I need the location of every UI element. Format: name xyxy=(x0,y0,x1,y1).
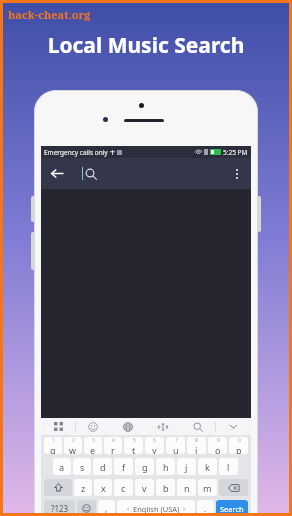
staticText: m xyxy=(203,482,212,494)
button[interactable]: Backspace xyxy=(219,479,248,496)
staticText: p xyxy=(236,444,242,454)
staticText: w xyxy=(69,444,77,454)
staticText: t xyxy=(132,444,136,454)
staticText: , xyxy=(105,503,108,514)
button[interactable]: v xyxy=(135,479,154,496)
button[interactable]: h xyxy=(156,458,175,475)
button[interactable]: Emoji xyxy=(77,500,96,516)
button[interactable]: 3 xyxy=(84,437,102,454)
staticText: English (USA) xyxy=(133,504,180,514)
staticText: k xyxy=(205,461,210,473)
staticText: a xyxy=(59,461,65,473)
staticText: Search xyxy=(220,504,244,514)
staticText: 2 xyxy=(72,437,75,444)
button[interactable]: More options xyxy=(223,160,251,188)
button[interactable]: . xyxy=(197,500,214,516)
button[interactable]: ?123 xyxy=(44,500,75,516)
staticText: 3 xyxy=(92,437,95,444)
staticText: 7 xyxy=(175,437,178,444)
staticText: g xyxy=(142,461,148,473)
staticText: u xyxy=(173,444,179,454)
button[interactable]: 1 xyxy=(44,437,62,454)
staticText: 5 xyxy=(133,437,136,444)
staticText: Local Music Search xyxy=(0,31,292,60)
staticText: o xyxy=(215,444,221,454)
button[interactable]: s xyxy=(73,458,91,475)
staticText: hack-cheat.org xyxy=(8,7,91,22)
button[interactable]: z xyxy=(74,479,92,496)
button[interactable]: Shift xyxy=(44,479,72,496)
staticText: 9 xyxy=(217,437,220,444)
button[interactable]: f xyxy=(114,458,133,475)
staticText: 5:25 PM xyxy=(223,148,248,157)
staticText: ‹ xyxy=(127,504,130,514)
staticText: f xyxy=(122,461,126,473)
button[interactable]: 2 xyxy=(64,437,82,454)
staticText: s xyxy=(80,461,85,473)
button[interactable]: , xyxy=(98,500,115,516)
staticText: 8 xyxy=(195,437,198,444)
button[interactable]: 5 xyxy=(124,437,143,454)
staticText: h xyxy=(163,461,169,473)
staticText: 0 xyxy=(238,437,241,444)
staticText: d xyxy=(100,461,106,473)
staticText: x xyxy=(101,482,106,494)
button[interactable]: a xyxy=(53,458,71,475)
staticText: i xyxy=(195,444,198,454)
button[interactable]: 9 xyxy=(208,437,227,454)
button[interactable]: Collapse xyxy=(216,418,251,435)
staticText: r xyxy=(111,444,115,454)
button[interactable]: m xyxy=(198,479,217,496)
button[interactable]: l xyxy=(219,458,238,475)
staticText: b xyxy=(163,482,169,494)
staticText: . xyxy=(204,503,207,514)
staticText: Emergency calls only xyxy=(44,148,108,157)
button[interactable]: Back xyxy=(41,158,72,189)
staticText: y xyxy=(152,444,157,454)
button[interactable]: 6 xyxy=(145,437,164,454)
button[interactable]: b xyxy=(156,479,175,496)
button[interactable]: Search xyxy=(180,418,215,435)
button[interactable]: ‹ xyxy=(117,500,195,516)
button[interactable]: c xyxy=(114,479,133,496)
button[interactable]: Language xyxy=(110,418,145,435)
button[interactable]: 4 xyxy=(104,437,122,454)
staticText: v xyxy=(142,482,147,494)
staticText: c xyxy=(121,482,126,494)
button[interactable]: d xyxy=(93,458,112,475)
staticText: › xyxy=(183,504,186,514)
button[interactable]: j xyxy=(177,458,196,475)
button[interactable]: x xyxy=(94,479,112,496)
button[interactable]: 7 xyxy=(166,437,185,454)
button[interactable]: n xyxy=(177,479,196,496)
button[interactable]: 8 xyxy=(187,437,206,454)
button[interactable]: k xyxy=(198,458,217,475)
staticText: 6 xyxy=(153,437,156,444)
button[interactable]: Emoji xyxy=(76,418,110,435)
button[interactable]: Apps xyxy=(41,418,75,435)
staticText: 1 xyxy=(52,437,55,444)
staticText: l xyxy=(227,461,230,473)
button[interactable]: g xyxy=(135,458,154,475)
staticText: 4 xyxy=(112,437,115,444)
staticText: ?123 xyxy=(51,503,69,514)
staticText: n xyxy=(184,482,190,494)
button[interactable]: 0 xyxy=(229,437,248,454)
staticText: j xyxy=(185,461,188,473)
staticText: e xyxy=(90,444,96,454)
staticText: z xyxy=(81,482,86,494)
button[interactable]: Search xyxy=(216,500,248,516)
button[interactable]: Text editing xyxy=(145,418,180,435)
staticText: q xyxy=(50,444,56,454)
